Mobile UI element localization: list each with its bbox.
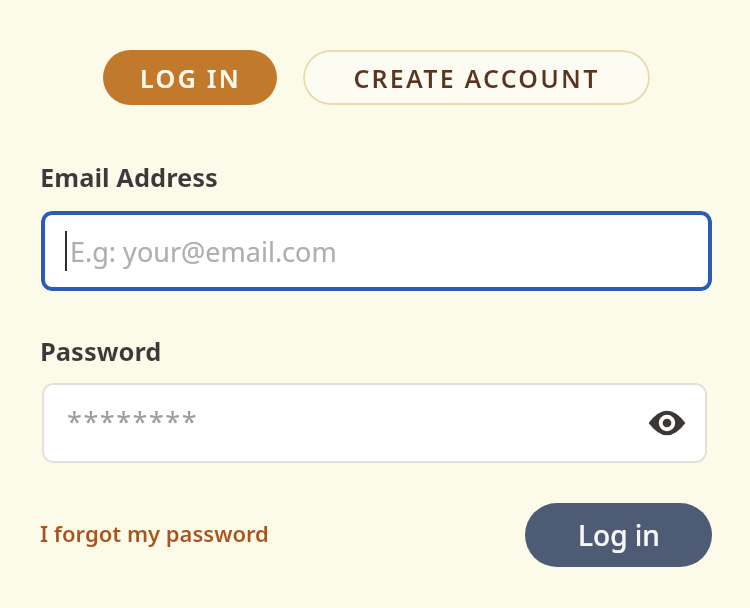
button[interactable]: LOG IN	[103, 50, 277, 105]
button[interactable]: ********	[42, 383, 707, 463]
button[interactable]: Show password	[641, 397, 693, 449]
button[interactable]: I forgot my password	[40, 518, 269, 548]
staticText: CREATE ACCOUNT	[353, 61, 600, 95]
staticText: I forgot my password	[40, 518, 269, 548]
button[interactable]: E.g: your@email.com	[41, 211, 712, 291]
staticText: Log in	[578, 516, 660, 554]
staticText: Email Address	[40, 160, 218, 195]
button[interactable]: Log in	[525, 503, 712, 567]
button[interactable]: CREATE ACCOUNT	[303, 50, 650, 105]
staticText: E.g: your@email.com	[70, 233, 337, 270]
staticText: Password	[40, 334, 162, 369]
staticText: ********	[67, 403, 199, 440]
staticText: LOG IN	[140, 61, 241, 95]
